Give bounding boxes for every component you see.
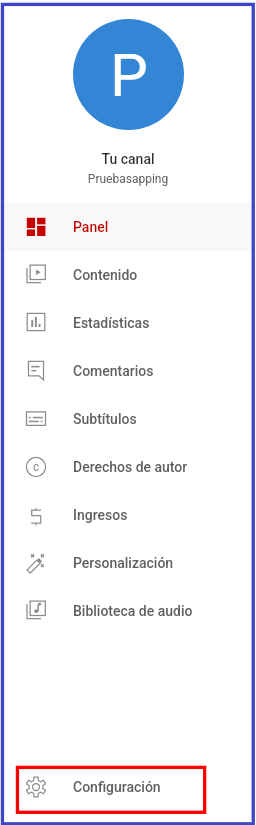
staticText: Subtítulos [73,411,137,427]
button[interactable]: Ingresos [0,491,256,539]
staticText: Biblioteca de audio [73,603,193,619]
staticText: Tu canal [0,151,256,167]
staticText: Derechos de autor [73,459,188,475]
button[interactable]: Comentarios [0,347,256,395]
staticText: c [33,460,40,474]
button[interactable]: Contenido [0,251,256,299]
button[interactable]: Panel [0,203,256,251]
button[interactable]: Biblioteca de audio [0,587,256,635]
staticText: Personalización [73,555,174,571]
staticText: Pruebasapping [0,172,256,186]
staticText: Configuración [73,779,161,795]
staticText: Comentarios [73,363,154,379]
button[interactable]: Estadísticas [0,299,256,347]
staticText: P [110,40,148,110]
staticText: Panel [73,219,109,235]
staticText: Contenido [73,267,138,283]
button[interactable]: Personalización [0,539,256,587]
staticText: Ingresos [73,507,128,523]
button[interactable]: Subtítulos [0,395,256,443]
button[interactable]: c [0,443,256,491]
staticText: Estadísticas [73,315,150,331]
button[interactable]: Configuración [0,763,256,811]
